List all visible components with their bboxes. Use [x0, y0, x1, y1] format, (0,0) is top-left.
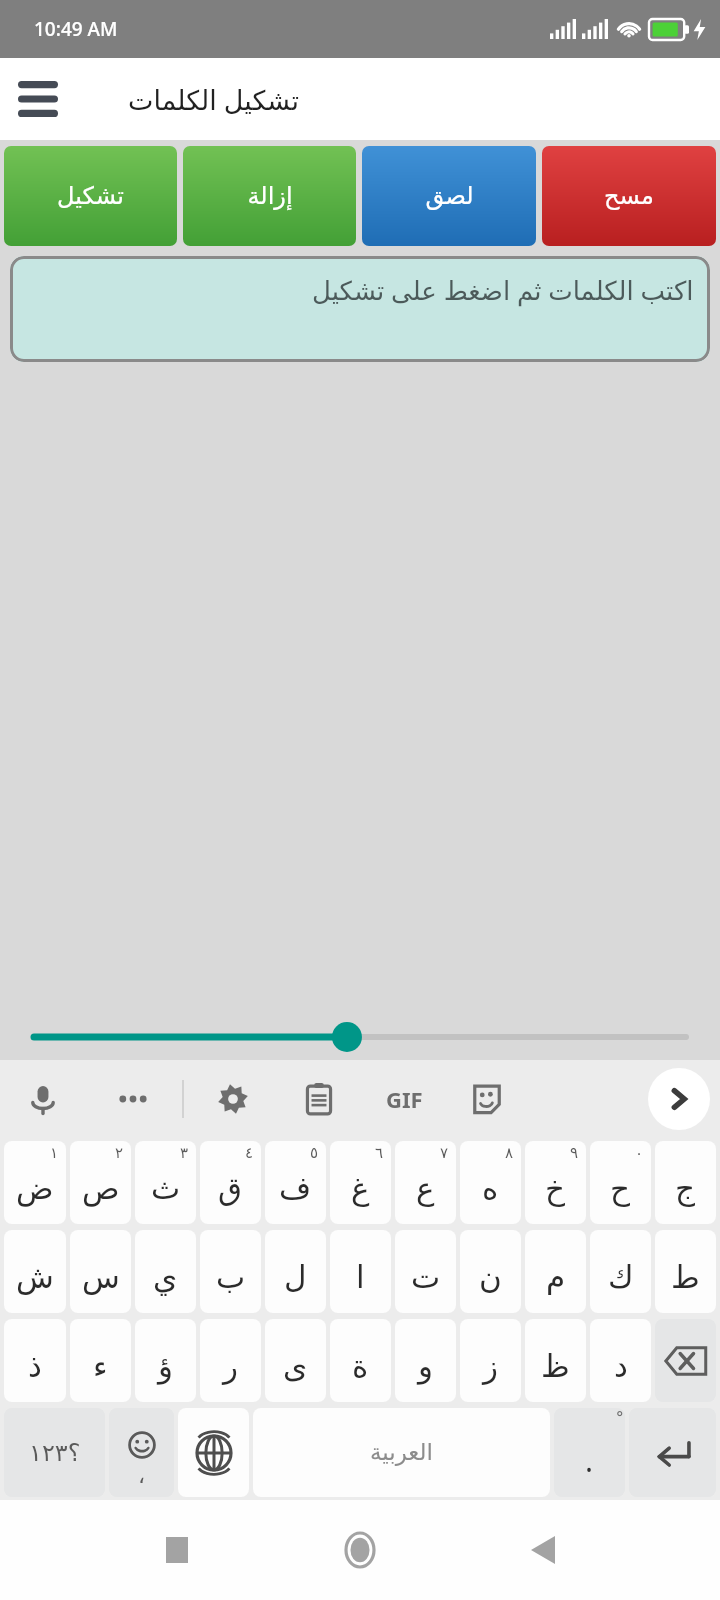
staticText: ط: [671, 1259, 700, 1295]
button[interactable]: ت: [395, 1230, 456, 1313]
button[interactable]: ر: [200, 1319, 261, 1402]
staticText: إزالة: [247, 182, 293, 210]
staticText: ١: [50, 1144, 59, 1161]
button[interactable]: اكتب الكلمات ثم اضغط على تشكيل: [10, 256, 710, 362]
button[interactable]: Emoji: [109, 1408, 174, 1497]
staticText: ٧: [440, 1144, 449, 1161]
staticText: اكتب الكلمات ثم اضغط على تشكيل: [312, 272, 694, 307]
staticText: ٤: [245, 1144, 254, 1161]
staticText: ن: [479, 1259, 502, 1295]
button[interactable]: ٠: [590, 1141, 651, 1224]
staticText: ؟١٢٣: [29, 1439, 81, 1467]
button[interactable]: Home: [325, 1515, 395, 1585]
button[interactable]: ل: [265, 1230, 326, 1313]
button[interactable]: و: [395, 1319, 456, 1402]
button[interactable]: ١: [4, 1141, 66, 1224]
button[interactable]: Voice input: [16, 1072, 70, 1126]
staticText: GIF: [386, 1084, 423, 1114]
button[interactable]: Expand toolbar: [648, 1068, 710, 1130]
staticText: ٩: [570, 1144, 579, 1161]
button[interactable]: ٣: [135, 1141, 196, 1224]
button[interactable]: ى: [265, 1319, 326, 1402]
button[interactable]: Menu: [10, 71, 66, 127]
staticText: م: [546, 1259, 566, 1295]
button[interactable]: ن: [460, 1230, 521, 1313]
staticText: 10:49 AM: [34, 16, 118, 42]
staticText: ٣: [180, 1144, 189, 1161]
button[interactable]: ظ: [525, 1319, 586, 1402]
staticText: ح: [610, 1170, 631, 1206]
staticText: ش: [16, 1259, 54, 1295]
button[interactable]: ؤ: [135, 1319, 196, 1402]
staticText: ر: [223, 1348, 238, 1384]
staticText: ه: [482, 1170, 499, 1206]
button[interactable]: ٤: [200, 1141, 261, 1224]
staticText: ق: [218, 1170, 243, 1206]
button[interactable]: العربية: [253, 1408, 550, 1497]
staticText: ت: [411, 1259, 441, 1295]
button[interactable]: ٢: [70, 1141, 131, 1224]
button[interactable]: Back: [508, 1515, 578, 1585]
button[interactable]: ب: [200, 1230, 261, 1313]
staticText: ى: [283, 1348, 308, 1384]
button[interactable]: Enter: [629, 1408, 716, 1497]
staticText: ٠: [635, 1144, 644, 1161]
button[interactable]: مسح: [542, 146, 716, 246]
staticText: ز: [483, 1348, 498, 1384]
button[interactable]: ٦: [330, 1141, 391, 1224]
staticText: ؤ: [158, 1348, 173, 1384]
button[interactable]: ٨: [460, 1141, 521, 1224]
staticText: ب: [216, 1259, 246, 1295]
staticText: ع: [416, 1170, 435, 1206]
button[interactable]: ة: [330, 1319, 391, 1402]
staticText: ة: [352, 1348, 369, 1384]
staticText: تشكيل الكلمات: [128, 81, 299, 118]
button[interactable]: Settings: [206, 1072, 260, 1126]
staticText: ء: [93, 1348, 108, 1384]
button[interactable]: More options: [106, 1072, 160, 1126]
button[interactable]: ش: [4, 1230, 66, 1313]
staticText: ي: [153, 1259, 178, 1295]
button[interactable]: ٥: [265, 1141, 326, 1224]
button[interactable]: ذ: [4, 1319, 66, 1402]
button[interactable]: م: [525, 1230, 586, 1313]
button[interactable]: ج: [655, 1141, 716, 1224]
button[interactable]: ْ: [554, 1408, 625, 1497]
button[interactable]: ء: [70, 1319, 131, 1402]
button[interactable]: Clipboard: [292, 1072, 346, 1126]
button[interactable]: س: [70, 1230, 131, 1313]
staticText: مسح: [604, 182, 654, 210]
button[interactable]: Backspace: [655, 1319, 716, 1402]
staticText: و: [418, 1348, 433, 1384]
button[interactable]: Switch language: [178, 1408, 249, 1497]
button[interactable]: د: [590, 1319, 651, 1402]
button[interactable]: تشكيل: [4, 146, 177, 246]
button[interactable]: ؟١٢٣: [4, 1408, 105, 1497]
staticText: ف: [279, 1170, 312, 1206]
button[interactable]: ز: [460, 1319, 521, 1402]
staticText: ٨: [505, 1144, 514, 1161]
button[interactable]: Stickers: [460, 1072, 514, 1126]
staticText: تشكيل: [57, 182, 124, 210]
staticText: ل: [284, 1259, 307, 1295]
staticText: د: [614, 1348, 628, 1384]
staticText: ا: [356, 1259, 365, 1295]
button[interactable]: ي: [135, 1230, 196, 1313]
button[interactable]: لصق: [362, 146, 536, 246]
button[interactable]: ط: [655, 1230, 716, 1313]
staticText: ،: [138, 1463, 146, 1489]
staticText: ٢: [115, 1144, 124, 1161]
button[interactable]: ك: [590, 1230, 651, 1313]
staticText: لصق: [425, 182, 474, 210]
button[interactable]: GIF: [376, 1071, 432, 1127]
staticText: العربية: [370, 1439, 433, 1466]
button[interactable]: Recents: [142, 1515, 212, 1585]
button[interactable]: ٧: [395, 1141, 456, 1224]
staticText: ج: [675, 1170, 696, 1206]
staticText: ض: [16, 1170, 54, 1206]
staticText: .: [585, 1440, 594, 1481]
button[interactable]: ٩: [525, 1141, 586, 1224]
button[interactable]: ا: [330, 1230, 391, 1313]
button[interactable]: إزالة: [183, 146, 356, 246]
staticText: س: [82, 1259, 120, 1295]
